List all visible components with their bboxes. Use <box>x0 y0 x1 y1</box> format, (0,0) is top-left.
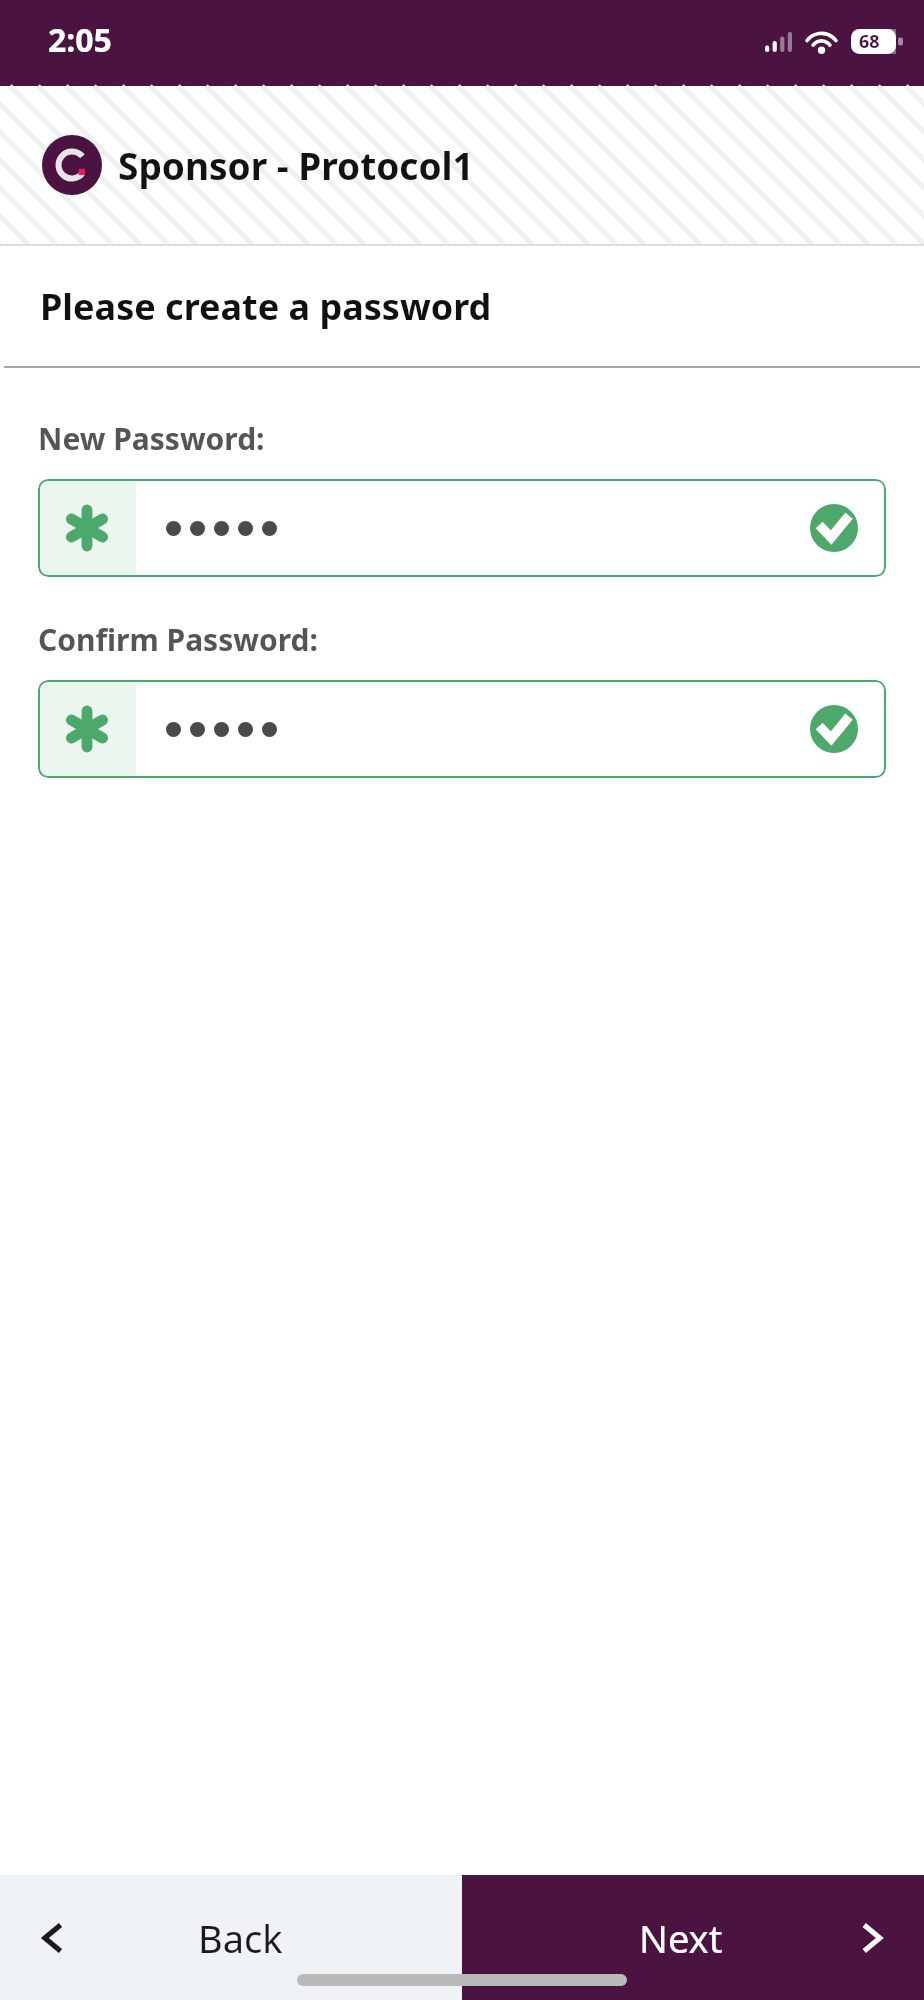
staticText: 2:05 <box>48 18 112 62</box>
button[interactable]: Next <box>462 1875 924 2000</box>
staticText: Sponsor - Protocol1 <box>118 140 474 190</box>
button[interactable]: Valid <box>38 479 886 577</box>
staticText: Confirm Password: <box>38 619 318 660</box>
staticText: Next <box>639 1912 723 1964</box>
other: Valid <box>810 705 858 753</box>
staticText: Please create a password <box>40 282 492 331</box>
other: Valid <box>810 504 858 552</box>
staticText: Back <box>198 1912 283 1964</box>
button[interactable]: Back <box>0 1875 462 2000</box>
staticText: 68 <box>859 29 880 54</box>
button[interactable]: Valid <box>38 680 886 778</box>
staticText: New Password: <box>38 418 265 459</box>
